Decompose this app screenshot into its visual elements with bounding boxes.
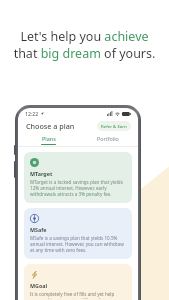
other: MTarget plan icon [30, 158, 39, 167]
staticText: MGoal [30, 282, 48, 289]
other: MGoal plan icon [30, 270, 39, 279]
other: MSafe plan icon [30, 214, 39, 223]
button[interactable]: Refer & Earn [97, 121, 131, 131]
staticText: It is completely free of fills and yet h… [30, 291, 126, 299]
staticText: Choose a plan [26, 121, 75, 131]
staticText: MTarget [30, 170, 53, 177]
staticText: Let's help you achieve that big dream of… [8, 28, 161, 62]
button[interactable]: MSafe plan icon [24, 208, 132, 259]
staticText: MSafe is a savings plan that yields 10.5… [30, 235, 126, 253]
staticText: Plans [42, 135, 56, 142]
button[interactable]: MTarget plan icon [24, 152, 132, 203]
staticText: MTarget is a locked savings plan that yi… [30, 179, 126, 197]
button[interactable]: Plans [18, 134, 78, 146]
staticText: Refer & Earn [101, 123, 127, 129]
staticText: 12:22 [25, 110, 39, 117]
staticText: MSafe [30, 226, 47, 233]
button[interactable]: Portfolio [78, 134, 138, 146]
staticText: Portfolio [97, 135, 119, 142]
button[interactable]: MGoal plan icon [24, 264, 132, 300]
